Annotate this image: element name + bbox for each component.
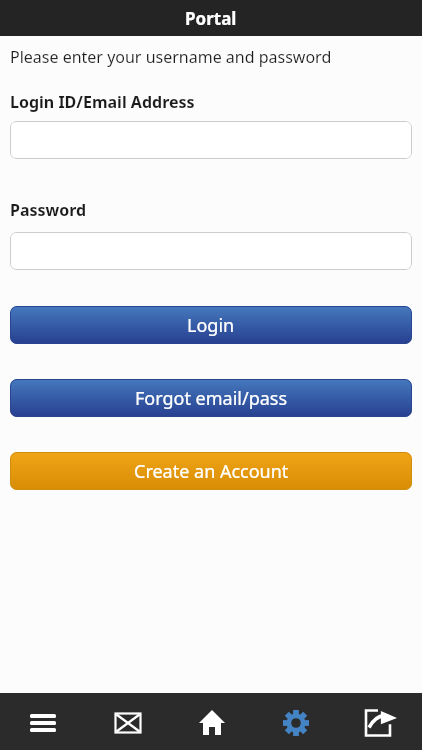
button[interactable]	[170, 693, 254, 750]
button[interactable]: Create an Account	[10, 452, 412, 490]
button[interactable]: Forgot email/pass	[10, 379, 412, 417]
staticText: Forgot email/pass	[135, 386, 288, 411]
button[interactable]	[254, 693, 338, 750]
staticText: Please enter your username and password	[10, 46, 332, 68]
button[interactable]	[10, 121, 412, 159]
staticText: Login ID/Email Address	[10, 91, 195, 113]
button[interactable]	[338, 693, 422, 750]
staticText: Create an Account	[134, 459, 289, 484]
staticText: Portal	[185, 7, 237, 30]
button[interactable]	[0, 693, 85, 750]
staticText: Password	[10, 199, 87, 221]
button[interactable]	[85, 693, 170, 750]
button[interactable]: Login	[10, 306, 412, 344]
button[interactable]	[10, 232, 412, 270]
staticText: Login	[187, 313, 235, 338]
